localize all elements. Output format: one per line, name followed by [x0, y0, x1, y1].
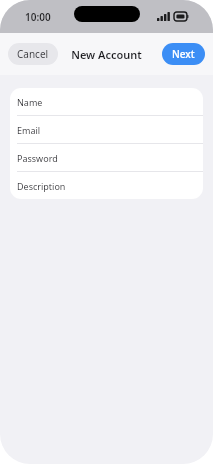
- button[interactable]: Next: [162, 43, 205, 65]
- staticText: Name: [17, 96, 43, 108]
- staticText: Password: [17, 152, 58, 164]
- button[interactable]: Description: [10, 172, 203, 199]
- staticText: Next: [172, 47, 195, 61]
- staticText: Email: [17, 124, 41, 136]
- button[interactable]: Name: [10, 88, 203, 116]
- staticText: Cancel: [17, 47, 49, 61]
- button[interactable]: Password: [10, 144, 203, 172]
- staticText: 10:00: [25, 10, 51, 24]
- button[interactable]: Cancel: [8, 43, 58, 65]
- staticText: New Account: [71, 47, 142, 62]
- staticText: Description: [17, 180, 66, 192]
- button[interactable]: Email: [10, 116, 203, 144]
